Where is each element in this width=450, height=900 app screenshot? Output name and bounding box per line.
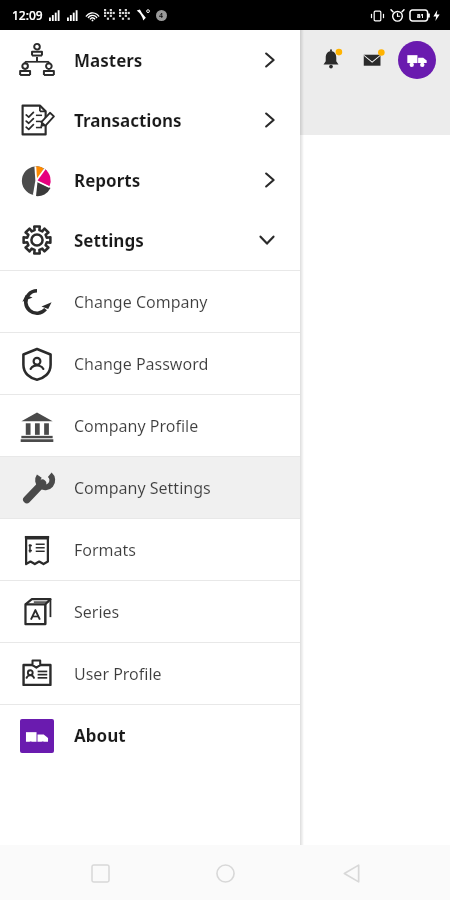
staticText: Company Profile xyxy=(74,415,199,437)
button[interactable]: Logout xyxy=(14,92,56,134)
staticText: Series xyxy=(74,601,120,623)
staticText: 4 xyxy=(159,11,164,21)
button[interactable]: Analytics xyxy=(82,39,124,81)
button[interactable]: Masters xyxy=(0,30,300,90)
button[interactable]: Company Profile xyxy=(0,395,300,456)
button[interactable]: Profile xyxy=(398,41,436,79)
button[interactable]: Formats xyxy=(0,519,300,580)
staticText: Change Company xyxy=(74,291,208,313)
button[interactable]: Notifications xyxy=(312,41,350,79)
button[interactable]: Reports xyxy=(0,150,300,210)
button[interactable]: Home xyxy=(199,847,251,899)
button[interactable]: Recent apps xyxy=(74,847,126,899)
button[interactable]: User Profile xyxy=(0,643,300,704)
button[interactable]: About xyxy=(0,705,300,766)
staticText: Transactions xyxy=(74,109,182,132)
staticText: Formats xyxy=(74,539,136,561)
staticText: About xyxy=(74,724,126,747)
button[interactable]: Company Settings xyxy=(0,457,300,518)
staticText: Company Settings xyxy=(74,477,211,499)
button[interactable]: Open navigation menu xyxy=(12,36,60,84)
button[interactable]: Back xyxy=(325,847,377,899)
staticText: 12:09 xyxy=(12,7,43,23)
button[interactable]: Change Password xyxy=(0,333,300,394)
staticText: Reports xyxy=(74,169,141,192)
staticText: Settings xyxy=(74,229,144,252)
staticText: User Profile xyxy=(74,663,162,685)
button[interactable]: Transactions xyxy=(0,90,300,150)
staticText: 81 xyxy=(417,12,424,20)
staticText: Masters xyxy=(74,49,143,72)
button[interactable]: Messages xyxy=(354,41,392,79)
staticText: Change Password xyxy=(74,353,209,375)
button[interactable]: Settings xyxy=(0,210,300,270)
button[interactable]: Series xyxy=(0,581,300,642)
button[interactable]: Change Company xyxy=(0,271,300,332)
